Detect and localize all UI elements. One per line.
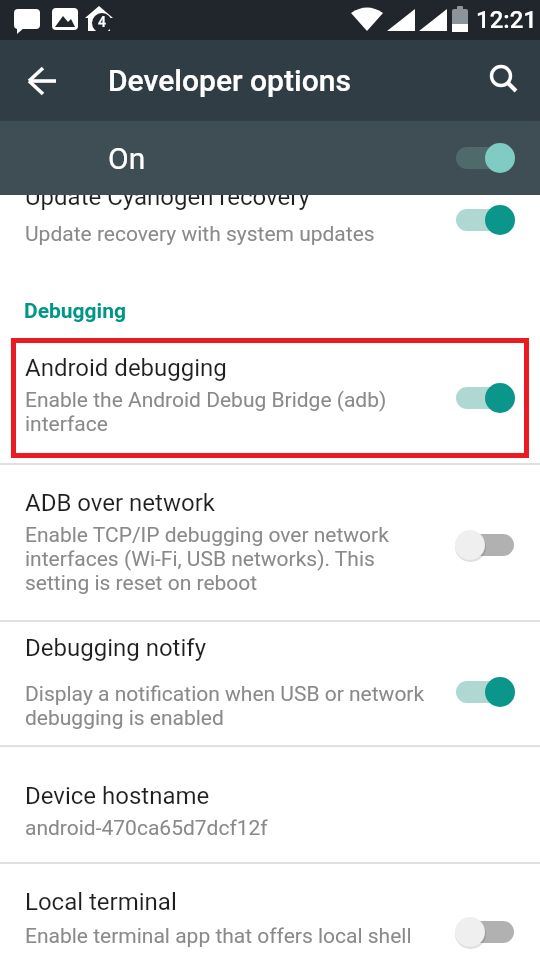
button[interactable] <box>455 677 515 707</box>
staticText: Update Cyanogen recovery <box>25 195 310 211</box>
button[interactable] <box>0 195 540 255</box>
button[interactable] <box>455 917 515 947</box>
button[interactable] <box>0 465 540 620</box>
button[interactable] <box>455 530 515 560</box>
staticText: ADB over network <box>25 489 215 517</box>
button[interactable] <box>0 864 540 960</box>
button[interactable] <box>455 205 515 235</box>
staticText: 4 <box>98 14 106 30</box>
staticText: Debugging <box>24 299 126 324</box>
staticText: Local terminal <box>25 888 177 916</box>
staticText: Android debugging <box>25 354 227 382</box>
staticText: Developer options <box>108 63 351 98</box>
staticText: Enable the Android Debug Bridge (adb) in… <box>25 388 387 436</box>
staticText: Enable TCP/IP debugging over network int… <box>25 523 389 595</box>
button[interactable] <box>455 143 515 173</box>
staticText: On <box>108 141 146 176</box>
button[interactable] <box>0 338 540 458</box>
staticText: Display a notification when USB or netwo… <box>25 682 425 730</box>
staticText: 12:21 <box>476 6 537 34</box>
button[interactable] <box>0 747 540 862</box>
staticText: Debugging notify <box>25 634 206 662</box>
button[interactable] <box>485 60 529 102</box>
button[interactable] <box>14 65 70 97</box>
staticText: android-470ca65d7dcf12f <box>25 816 268 841</box>
staticText: Enable terminal app that offers local sh… <box>25 924 412 949</box>
staticText: Update recovery with system updates <box>25 222 375 247</box>
button[interactable] <box>455 383 515 413</box>
button[interactable]: On <box>0 121 540 195</box>
button[interactable] <box>0 622 540 745</box>
staticText: Device hostname <box>25 782 210 810</box>
